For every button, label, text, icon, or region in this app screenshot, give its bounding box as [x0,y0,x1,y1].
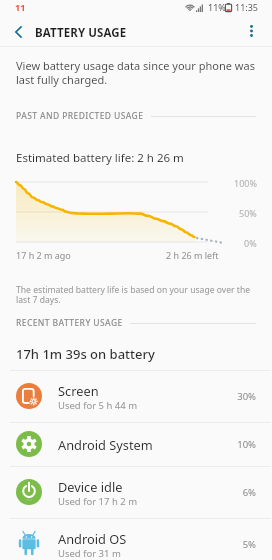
staticText: Android System [58,436,153,453]
staticText: 5% [242,538,256,551]
button[interactable]: Android OS [0,518,272,560]
staticText: View battery usage data since your phone… [16,58,256,88]
staticText: 11:35 [235,1,259,13]
staticText: 0% [244,237,257,249]
staticText: The estimated battery life is based on y… [16,284,256,305]
button[interactable]: Screen [0,370,272,422]
staticText: Screen [58,382,99,399]
staticText: RECENT BATTERY USAGE [16,317,123,329]
staticText: PAST AND PREDICTED USAGE [16,110,144,122]
staticText: Android OS [58,530,127,547]
staticText: Used for 31 m [58,547,121,560]
staticText: 17 h 2 m ago [16,249,71,261]
staticText: Used for 17 h 2 m [58,495,138,508]
staticText: 10% [237,438,256,451]
staticText: 30% [237,390,256,403]
staticText: 6% [242,486,256,499]
staticText: Estimated battery life: 2 h 26 m [16,150,184,166]
button[interactable]: More options [236,15,267,46]
staticText: 17h 1m 39s on battery [16,345,155,363]
staticText: 11% [208,1,226,13]
staticText: 11 [15,1,26,13]
button[interactable]: Android System [0,422,272,466]
staticText: Device idle [58,478,123,495]
button[interactable]: Device idle [0,466,272,518]
staticText: 100% [234,177,257,189]
staticText: 2 h 26 m left [166,249,219,261]
staticText: BATTERY USAGE [35,25,127,41]
staticText: 50% [239,207,257,219]
button[interactable]: Navigate up [2,16,34,48]
staticText: Used for 5 h 44 m [58,399,138,412]
